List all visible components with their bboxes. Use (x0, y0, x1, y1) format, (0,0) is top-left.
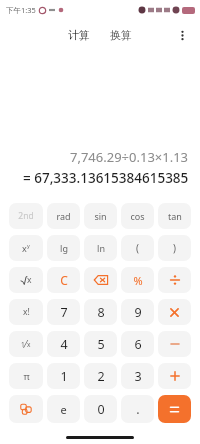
staticText: C (60, 272, 68, 288)
button[interactable]: Multiply (158, 299, 191, 325)
staticText: 0 (97, 401, 105, 418)
button[interactable]: 1 (47, 363, 80, 389)
button[interactable]: . (121, 395, 154, 423)
staticText: ) (173, 241, 176, 255)
button[interactable]: 换算 (105, 24, 137, 46)
button[interactable]: 7 (47, 299, 80, 325)
staticText: x (27, 274, 32, 286)
button[interactable]: e (47, 395, 80, 423)
button[interactable]: 0 (84, 395, 117, 423)
button[interactable]: ) (158, 235, 191, 261)
staticText: y (27, 242, 30, 249)
staticText: 4 (60, 336, 68, 353)
button[interactable]: More options (171, 24, 193, 46)
button[interactable]: x (9, 235, 43, 261)
staticText: ( (136, 241, 139, 255)
button[interactable]: 9 (121, 299, 154, 325)
staticText: 2 (97, 368, 105, 385)
staticText: 7,746.29÷0.13×1.13 (70, 148, 189, 166)
staticText: 1 (21, 340, 25, 349)
button[interactable]: Formulas (9, 395, 43, 423)
button[interactable]: Backspace (84, 267, 117, 293)
button[interactable]: Divide (158, 267, 191, 293)
button[interactable]: ( (121, 235, 154, 261)
button[interactable]: tan (158, 203, 191, 229)
button[interactable]: 4 (47, 331, 80, 357)
button[interactable]: C (47, 267, 80, 293)
button[interactable]: % (121, 267, 154, 293)
staticText: x (22, 242, 27, 254)
button[interactable]: 3 (121, 363, 154, 389)
button[interactable]: 2 (84, 363, 117, 389)
staticText: 7 (60, 304, 68, 321)
staticText: 9 (134, 304, 142, 321)
staticText: ln (97, 242, 105, 254)
button[interactable]: rad (47, 203, 80, 229)
staticText: ⁄ (25, 337, 27, 351)
staticText: 1 (60, 368, 68, 385)
staticText: x! (23, 306, 30, 318)
staticText: sin (94, 210, 107, 222)
staticText: rad (56, 210, 71, 222)
button[interactable]: ln (84, 235, 117, 261)
button[interactable]: Reciprocal (9, 331, 43, 357)
button[interactable]: Equals (158, 395, 191, 423)
button[interactable]: 计算 (63, 24, 95, 46)
staticText: 下午1:35 (6, 5, 36, 15)
button[interactable]: x! (9, 299, 43, 325)
button[interactable]: cos (121, 203, 154, 229)
button[interactable]: sin (84, 203, 117, 229)
staticText: % (133, 273, 143, 288)
staticText: 计算 (68, 28, 90, 42)
button[interactable]: π (9, 363, 43, 389)
staticText: e (60, 402, 67, 417)
staticText: cos (130, 210, 145, 222)
staticText: x (27, 340, 31, 349)
staticText: 2nd (18, 210, 34, 222)
staticText: tan (168, 210, 182, 222)
staticText: 8 (97, 304, 105, 321)
staticText: 6 (134, 336, 142, 353)
staticText: 换算 (110, 28, 132, 42)
button[interactable]: 6 (121, 331, 154, 357)
button[interactable]: 8 (84, 299, 117, 325)
button[interactable]: 5 (84, 331, 117, 357)
staticText: 5 (97, 336, 105, 353)
staticText: π (23, 370, 30, 383)
button[interactable]: 2nd (9, 203, 43, 229)
button[interactable]: Square root (9, 267, 43, 293)
staticText: = 67,333.13615384615385 (23, 169, 189, 187)
button[interactable]: lg (47, 235, 80, 261)
button[interactable]: Plus (158, 363, 191, 389)
staticText: . (136, 401, 140, 418)
button[interactable]: Minus (158, 331, 191, 357)
staticText: lg (60, 242, 68, 254)
staticText: 3 (134, 368, 142, 385)
